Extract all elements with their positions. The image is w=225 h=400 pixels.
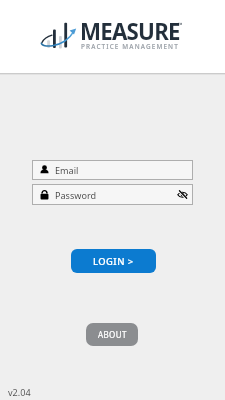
button[interactable]: Password bbox=[32, 184, 193, 205]
button[interactable]: Email bbox=[32, 160, 193, 180]
staticText: Email bbox=[55, 164, 79, 176]
staticText: MEASURE bbox=[80, 16, 180, 46]
staticText: LOGIN > bbox=[93, 255, 134, 268]
button[interactable]: LOGIN > bbox=[71, 249, 156, 273]
button[interactable]: Show password bbox=[177, 189, 188, 200]
staticText: Password bbox=[55, 189, 97, 201]
staticText: ABOUT bbox=[98, 329, 127, 340]
staticText: PRACTICE MANAGEMENT bbox=[81, 42, 179, 51]
staticText: v2.04 bbox=[8, 386, 31, 398]
button[interactable]: ABOUT bbox=[86, 323, 138, 346]
staticText: ™ bbox=[178, 21, 183, 29]
